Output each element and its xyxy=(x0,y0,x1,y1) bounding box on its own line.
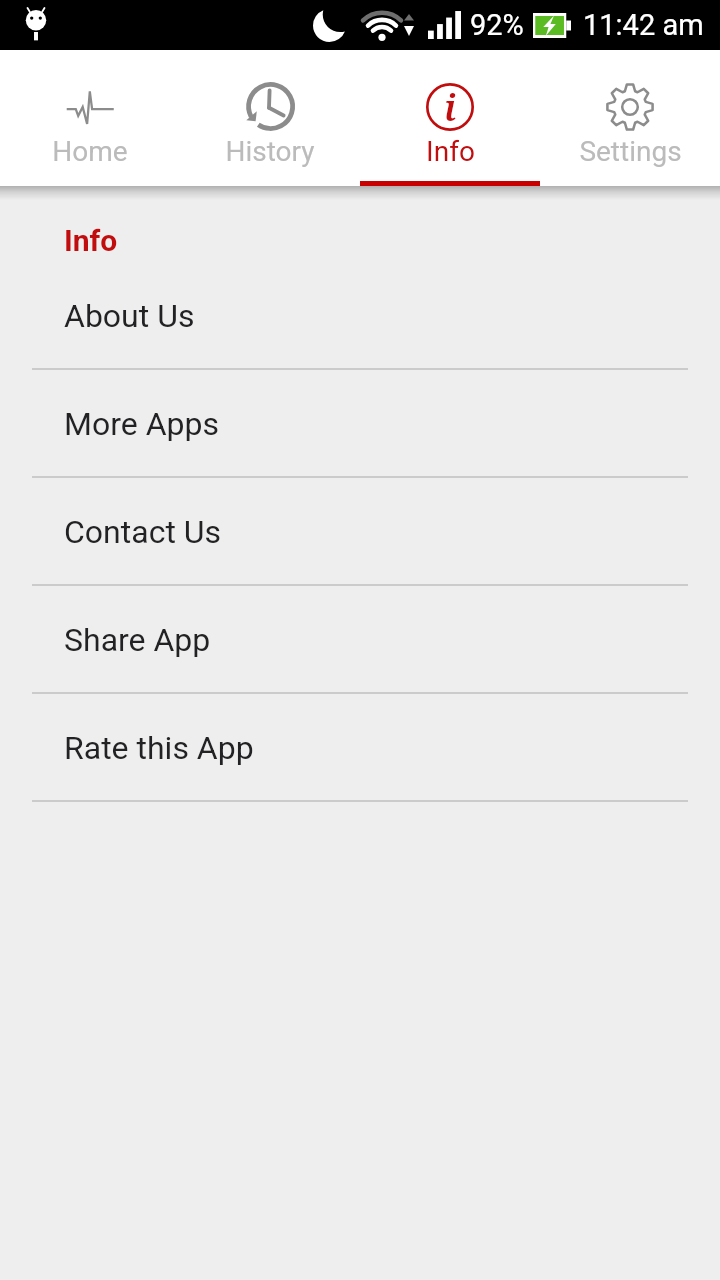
button[interactable]: Info xyxy=(360,50,540,186)
staticText: 92% xyxy=(470,8,524,42)
button[interactable]: Home xyxy=(0,50,180,186)
staticText: Info xyxy=(426,135,475,168)
button[interactable]: Contact Us xyxy=(0,478,720,586)
staticText: Contact Us xyxy=(64,513,222,551)
staticText: Info xyxy=(64,223,118,258)
staticText: About Us xyxy=(64,297,195,335)
staticText: Home xyxy=(52,135,128,168)
button[interactable]: Rate this App xyxy=(0,694,720,802)
staticText: i xyxy=(444,83,457,131)
staticText: More Apps xyxy=(64,405,219,443)
staticText: Share App xyxy=(64,621,211,659)
staticText: 11:42 am xyxy=(583,8,704,42)
button[interactable]: History xyxy=(180,50,360,186)
button[interactable]: Settings xyxy=(540,50,720,186)
staticText: Rate this App xyxy=(64,729,254,767)
button[interactable]: More Apps xyxy=(0,370,720,478)
staticText: History xyxy=(225,135,315,168)
button[interactable]: Share App xyxy=(0,586,720,694)
staticText: Settings xyxy=(579,135,682,168)
button[interactable]: About Us xyxy=(0,262,720,370)
